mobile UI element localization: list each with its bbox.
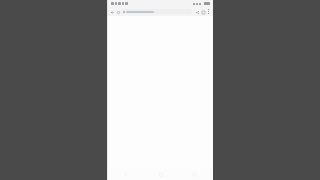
button[interactable]: Back	[109, 9, 115, 15]
button[interactable]	[122, 9, 192, 14]
button[interactable]: More options	[206, 9, 211, 14]
button[interactable]: Share	[194, 9, 200, 15]
button[interactable]: Tabs	[200, 9, 206, 15]
button[interactable]: Reload	[115, 9, 121, 15]
